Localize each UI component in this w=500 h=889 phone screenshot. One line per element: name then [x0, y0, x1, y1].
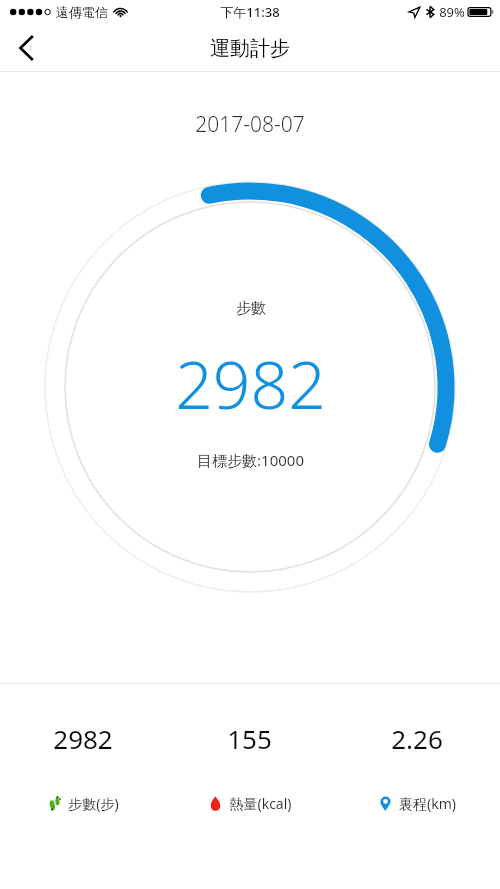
button[interactable]: Back: [0, 24, 52, 72]
staticText: 遠傳電信: [56, 4, 108, 20]
staticText: 155: [227, 721, 272, 756]
staticText: 2982: [175, 338, 326, 428]
staticText: 運動計步: [210, 36, 290, 61]
button[interactable]: 2982: [0, 721, 166, 813]
staticText: 2017-08-07: [195, 110, 305, 139]
staticText: 步數: [236, 299, 266, 318]
staticText: 熱量(kcal): [229, 794, 292, 813]
staticText: 2982: [53, 721, 113, 756]
button[interactable]: 155: [166, 721, 333, 813]
staticText: 裏程(km): [399, 794, 456, 813]
staticText: 目標步數:10000: [197, 450, 304, 470]
staticText: 2.26: [391, 721, 443, 756]
staticText: 89%: [439, 3, 465, 21]
button[interactable]: 2.26: [333, 721, 500, 813]
staticText: 步數(步): [68, 794, 119, 813]
staticText: 下午11:38: [220, 3, 280, 21]
